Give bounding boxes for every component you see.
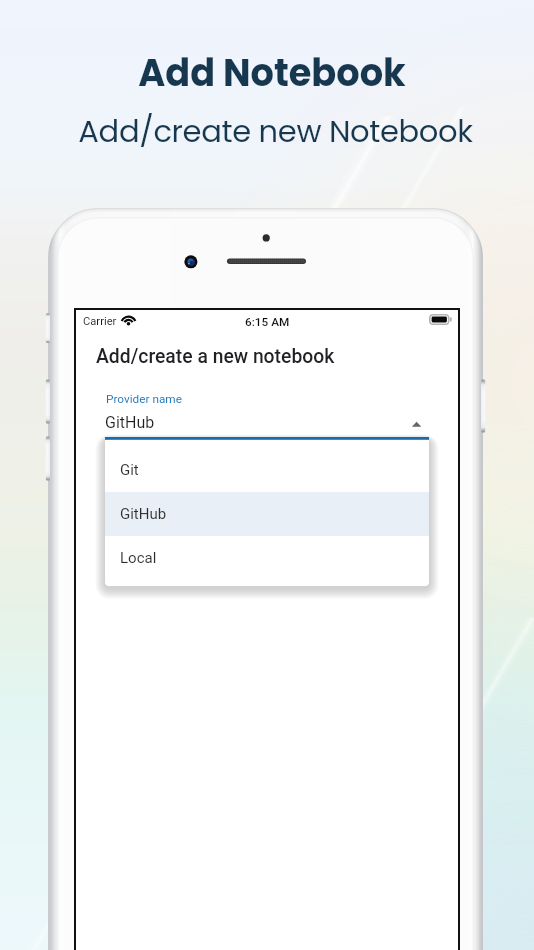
staticText: Add Notebook (138, 45, 406, 99)
staticText: Local (120, 549, 157, 567)
staticText: Carrier (83, 315, 117, 328)
staticText: Add/create new Notebook (78, 110, 473, 153)
button[interactable]: GitHub (105, 412, 428, 440)
staticText: Provider name (106, 392, 182, 406)
staticText: GitHub (120, 505, 167, 523)
other: Collapse provider list (404, 410, 428, 428)
staticText: GitHub (105, 413, 155, 432)
staticText: Git (120, 461, 139, 479)
button[interactable]: GitHub (105, 492, 429, 536)
button[interactable]: Local (105, 536, 429, 580)
staticText: 6:15 AM (245, 315, 290, 329)
staticText: Add/create a new notebook (96, 345, 335, 368)
button[interactable]: Git (105, 448, 429, 492)
